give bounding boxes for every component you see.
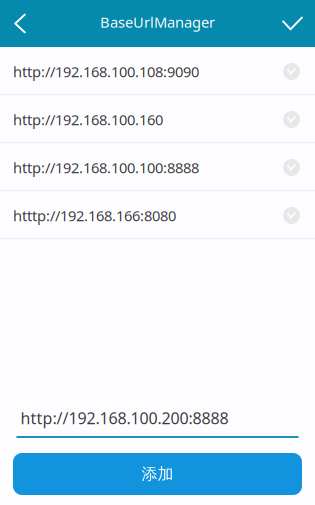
staticText: htttp://192.168.166:8080: [13, 206, 176, 225]
button[interactable]: 添加: [13, 453, 302, 495]
staticText: http://192.168.100.100:8888: [13, 158, 199, 177]
staticText: http://192.168.100.108:9090: [13, 62, 199, 81]
staticText: http://192.168.100.200:8888: [20, 407, 228, 429]
button[interactable]: http://192.168.100.100:8888: [0, 143, 315, 191]
button[interactable]: http://192.168.100.160: [0, 95, 315, 143]
button[interactable]: Back: [0, 0, 48, 47]
button[interactable]: htttp://192.168.166:8080: [0, 191, 315, 239]
button[interactable]: http://192.168.100.200:8888: [16, 407, 298, 438]
button[interactable]: http://192.168.100.108:9090: [0, 47, 315, 95]
staticText: 添加: [141, 464, 173, 484]
staticText: http://192.168.100.160: [13, 110, 163, 129]
button[interactable]: Confirm: [267, 0, 315, 47]
staticText: BaseUrlManager: [100, 12, 215, 32]
